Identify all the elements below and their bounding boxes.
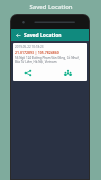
- button[interactable]: Open in Maps: [62, 67, 73, 78]
- button[interactable]: Back: [14, 31, 22, 39]
- staticText: 2019-05-22 10:18:23: [15, 45, 44, 49]
- staticText: 56 Ngõ 124 Đường Phạm Văn Đồng, Cổ Nhuế,…: [15, 56, 80, 64]
- button[interactable]: 2019-05-22 10:18:23: [13, 43, 87, 81]
- staticText: 21.0172893 | 105.7824860: [15, 50, 59, 55]
- button[interactable]: Share: [22, 67, 33, 78]
- staticText: Saved Location: [29, 3, 73, 11]
- staticText: Saved Location: [24, 32, 62, 39]
- button[interactable]: Back: [11, 29, 89, 41]
